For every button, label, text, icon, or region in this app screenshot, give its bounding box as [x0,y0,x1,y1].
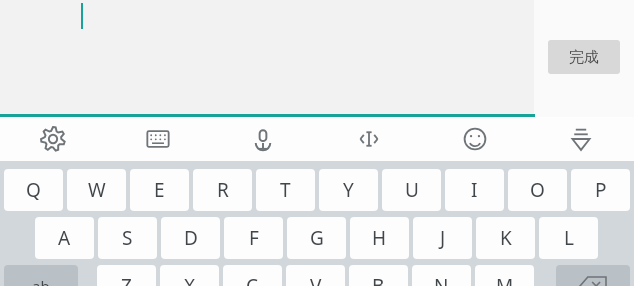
staticText: O [530,177,545,203]
button[interactable]: H [350,217,409,259]
button[interactable]: F [224,217,283,259]
staticText: Q [26,177,41,203]
staticText: F [249,225,259,251]
staticText: ab [32,276,50,286]
staticText: Y [343,177,354,203]
staticText: J [440,225,446,251]
button[interactable]: Voice input [210,117,316,161]
button[interactable]: Move cursor [316,117,422,161]
staticText: M [496,273,514,286]
staticText: D [184,225,198,251]
button[interactable]: D [161,217,220,259]
button[interactable]: N [412,265,471,286]
staticText: L [564,225,574,251]
button[interactable]: P [571,169,630,211]
staticText: S [122,225,133,251]
staticText: G [310,225,324,251]
staticText: A [58,225,71,251]
button[interactable]: M [475,265,534,286]
staticText: X [184,273,196,286]
button[interactable]: Emoji [422,117,528,161]
button[interactable]: B [349,265,408,286]
button[interactable]: C [223,265,282,286]
staticText: I [471,177,478,203]
button[interactable]: U [382,169,441,211]
button[interactable]: S [98,217,157,259]
button[interactable]: Q [4,169,63,211]
staticText: K [500,225,512,251]
staticText: N [434,273,449,286]
button[interactable]: W [67,169,126,211]
button[interactable]: X [160,265,219,286]
button[interactable]: ab [4,265,78,286]
button[interactable]: T [256,169,315,211]
staticText: B [372,273,385,286]
staticText: T [280,177,291,203]
button[interactable]: Settings [0,117,105,161]
staticText: V [310,273,322,286]
button[interactable]: Hide keyboard [528,117,634,161]
button[interactable]: E [130,169,189,211]
button[interactable]: I [445,169,504,211]
staticText: R [217,177,229,203]
button[interactable]: L [539,217,598,259]
button[interactable]: Z [97,265,156,286]
button[interactable]: Y [319,169,378,211]
button[interactable]: V [286,265,345,286]
button[interactable]: 完成 [548,40,620,74]
staticText: Z [121,273,132,286]
staticText: P [595,177,607,203]
button[interactable]: G [287,217,346,259]
staticText: W [88,177,106,203]
staticText: H [372,225,387,251]
button[interactable]: Backspace [556,265,630,286]
button[interactable]: K [476,217,535,259]
staticText: C [246,273,259,286]
staticText: U [405,177,419,203]
button[interactable]: R [193,169,252,211]
staticText: 完成 [569,48,599,67]
button[interactable]: Keyboard layout [105,117,210,161]
button[interactable]: A [35,217,94,259]
button[interactable]: O [508,169,567,211]
staticText: E [154,177,165,203]
button[interactable]: J [413,217,472,259]
